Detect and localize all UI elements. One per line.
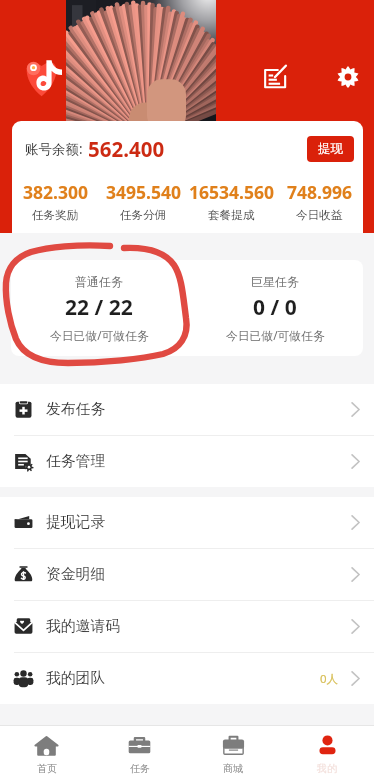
staticText: 562.400 bbox=[88, 135, 165, 163]
staticText: 普通任务 bbox=[75, 274, 123, 289]
button[interactable]: 普通任务 bbox=[11, 260, 187, 356]
staticText: 3495.540 bbox=[106, 180, 181, 204]
button[interactable]: 我的 bbox=[280, 726, 374, 781]
staticText: 今日收益 bbox=[296, 208, 343, 223]
button[interactable]: 巨星任务 bbox=[187, 260, 363, 356]
button[interactable]: 任务 bbox=[93, 726, 186, 781]
staticText: 任务管理 bbox=[46, 452, 106, 471]
staticText: 任务 bbox=[130, 762, 150, 775]
button[interactable]: 提现记录 bbox=[0, 497, 374, 548]
button[interactable]: 资金明细 bbox=[0, 549, 374, 600]
staticText: 商城 bbox=[223, 762, 243, 775]
staticText: 提现 bbox=[318, 141, 343, 157]
staticText: 22 / 22 bbox=[65, 293, 133, 322]
staticText: 今日已做/可做任务 bbox=[226, 327, 325, 343]
staticText: 16534.560 bbox=[189, 180, 274, 204]
staticText: 任务分佣 bbox=[120, 208, 167, 223]
staticText: 巨星任务 bbox=[251, 274, 299, 289]
staticText: 382.300 bbox=[23, 180, 88, 204]
button[interactable]: 首页 bbox=[0, 726, 93, 781]
staticText: 我的团队 bbox=[46, 669, 106, 688]
staticText: 首页 bbox=[37, 762, 57, 775]
staticText: 账号余额: bbox=[25, 140, 83, 158]
button[interactable]: 商城 bbox=[186, 726, 280, 781]
button[interactable]: Edit bbox=[255, 56, 296, 97]
staticText: 今日已做/可做任务 bbox=[50, 327, 149, 343]
button[interactable]: 发布任务 bbox=[0, 384, 374, 435]
staticText: 我的邀请码 bbox=[46, 617, 120, 636]
staticText: 748.996 bbox=[287, 180, 352, 204]
other: Logo bbox=[24, 54, 64, 98]
button[interactable]: 任务管理 bbox=[0, 436, 374, 487]
staticText: 提现记录 bbox=[46, 513, 106, 532]
staticText: 发布任务 bbox=[46, 400, 106, 419]
staticText: 套餐提成 bbox=[208, 208, 255, 223]
staticText: 0人 bbox=[320, 671, 339, 687]
button[interactable]: Settings bbox=[327, 56, 368, 97]
button[interactable]: 我的邀请码 bbox=[0, 601, 374, 652]
staticText: 任务奖励 bbox=[32, 208, 79, 223]
staticText: 0 / 0 bbox=[253, 293, 297, 322]
staticText: 资金明细 bbox=[46, 565, 106, 584]
button[interactable]: 我的团队 bbox=[0, 653, 374, 704]
staticText: 我的 bbox=[317, 762, 337, 775]
button[interactable]: 提现 bbox=[307, 136, 354, 162]
